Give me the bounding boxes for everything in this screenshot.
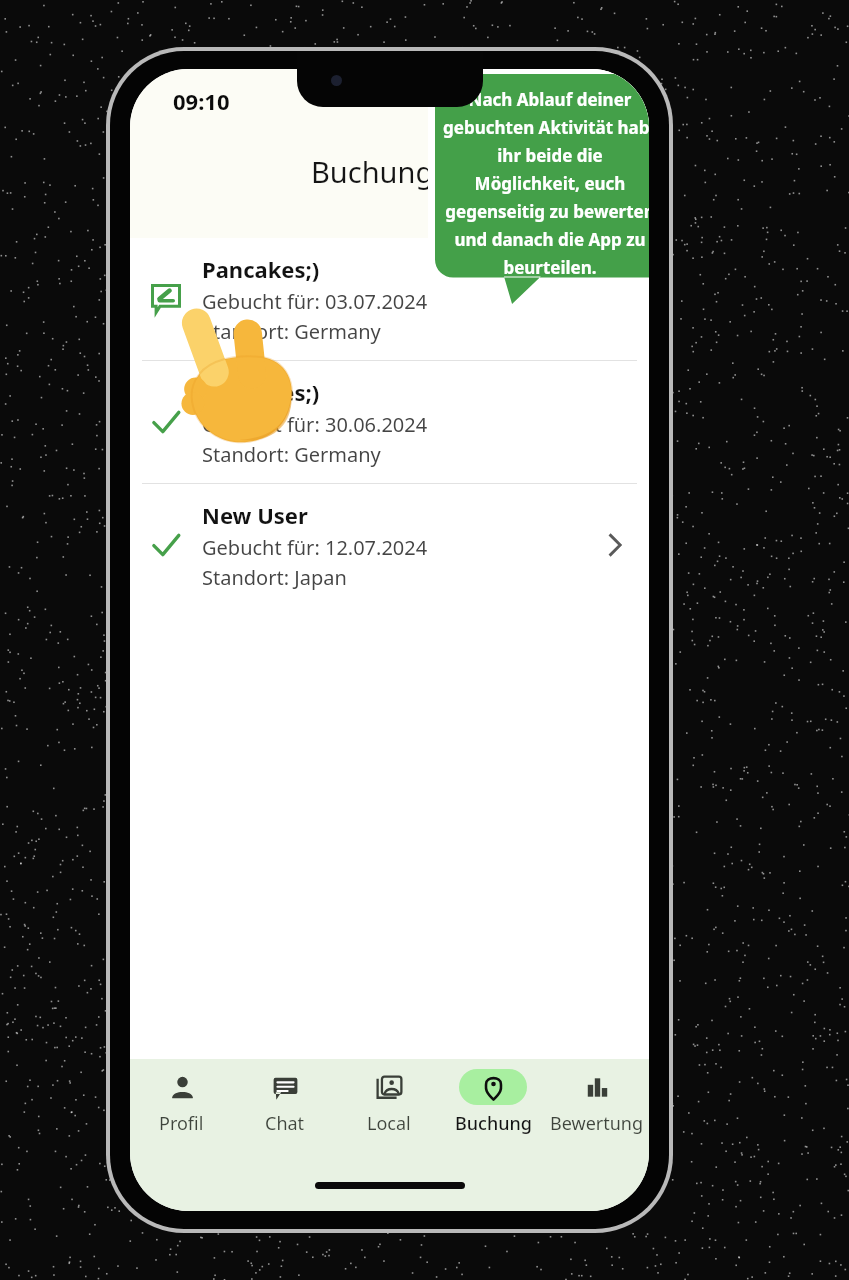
- button[interactable]: Profil: [130, 1069, 233, 1171]
- staticText: 74: [588, 92, 603, 110]
- staticText: Local: [367, 1111, 411, 1136]
- staticText: New User: [202, 500, 308, 530]
- staticText: Chat: [265, 1111, 305, 1136]
- staticText: Gebucht für: 03.07.2024: [202, 288, 428, 315]
- button[interactable]: New User: [130, 484, 649, 606]
- button[interactable]: Buchung: [441, 1069, 545, 1171]
- staticText: Pancakes;): [202, 254, 320, 284]
- staticText: Standort: Japan: [202, 564, 347, 591]
- button[interactable]: Chat: [233, 1069, 337, 1171]
- staticText: Gebucht für: 12.07.2024: [202, 534, 428, 561]
- staticText: Gebucht für: 30.06.2024: [202, 411, 428, 438]
- staticText: Standort: Germany: [202, 318, 381, 345]
- button[interactable]: Local: [337, 1069, 441, 1171]
- staticText: Buchung: [455, 1111, 532, 1136]
- staticText: Standort: Germany: [202, 441, 381, 468]
- button[interactable]: Pancakes;): [130, 361, 649, 483]
- staticText: Bewertung: [550, 1111, 644, 1136]
- staticText: Pancakes;): [202, 377, 320, 407]
- staticText: Buchungen: [311, 152, 468, 191]
- staticText: Profil: [159, 1111, 204, 1136]
- other: Details öffnen: [593, 523, 637, 567]
- staticText: Nach Ablauf deiner gebuchten Aktivität h…: [443, 88, 649, 279]
- button[interactable]: Bewertung: [545, 1069, 649, 1171]
- staticText: 09:10: [173, 86, 230, 116]
- button[interactable]: Pancakes;): [130, 238, 649, 360]
